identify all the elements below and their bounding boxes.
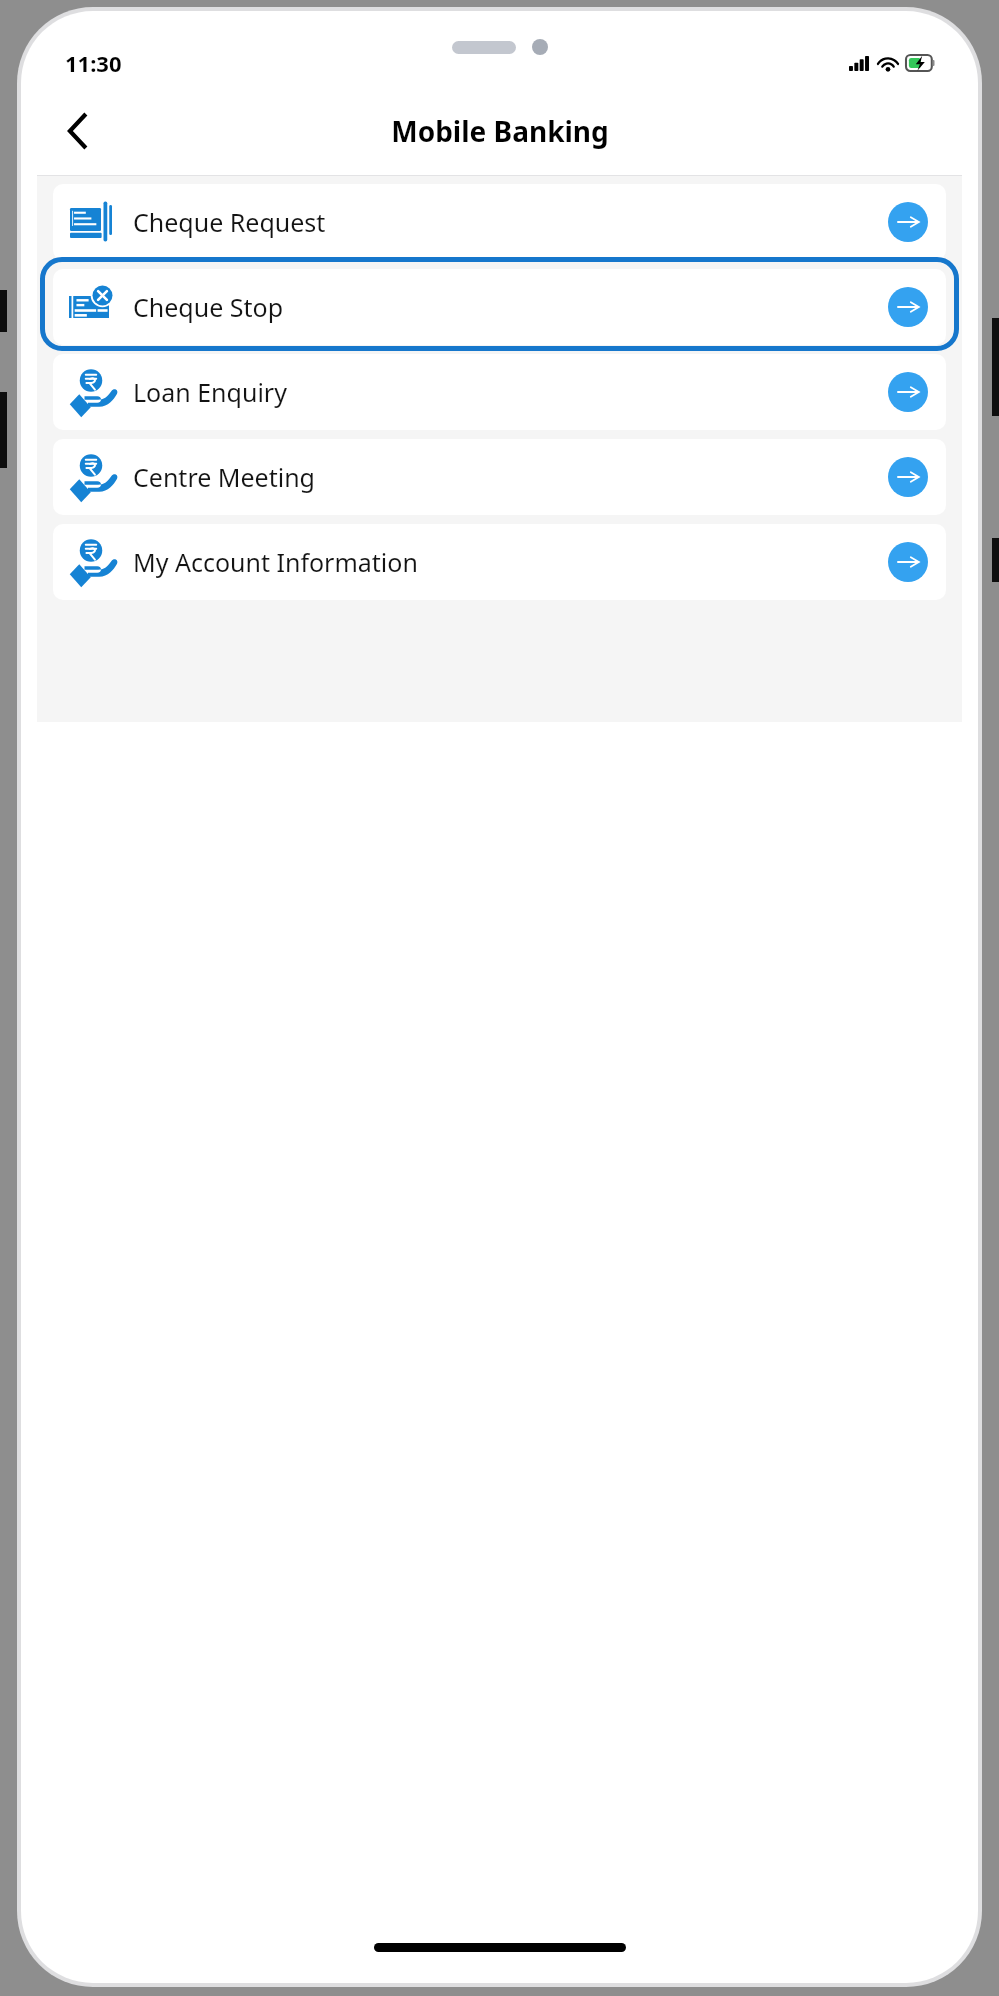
button[interactable]: Open Cheque Stop [888,287,928,327]
button[interactable]: My Account Information [53,524,946,600]
button[interactable]: Back [49,103,105,159]
button[interactable]: Open Centre Meeting [888,457,928,497]
button[interactable]: Loan Enquiry [53,354,946,430]
staticText: Loan Enquiry [133,375,287,409]
staticText: Centre Meeting [133,460,315,494]
button[interactable]: Cheque Stop [53,269,946,345]
staticText: Cheque Request [133,205,326,239]
button[interactable]: Centre Meeting [53,439,946,515]
staticText: Cheque Stop [133,290,284,324]
staticText: My Account Information [133,545,418,579]
staticText: 11:30 [65,48,122,78]
button[interactable]: Open Loan Enquiry [888,372,928,412]
button[interactable]: Open Cheque Request [888,202,928,242]
button[interactable]: Open My Account Information [888,542,928,582]
button[interactable]: Cheque Request [53,184,946,260]
staticText: Mobile Banking [391,112,609,150]
